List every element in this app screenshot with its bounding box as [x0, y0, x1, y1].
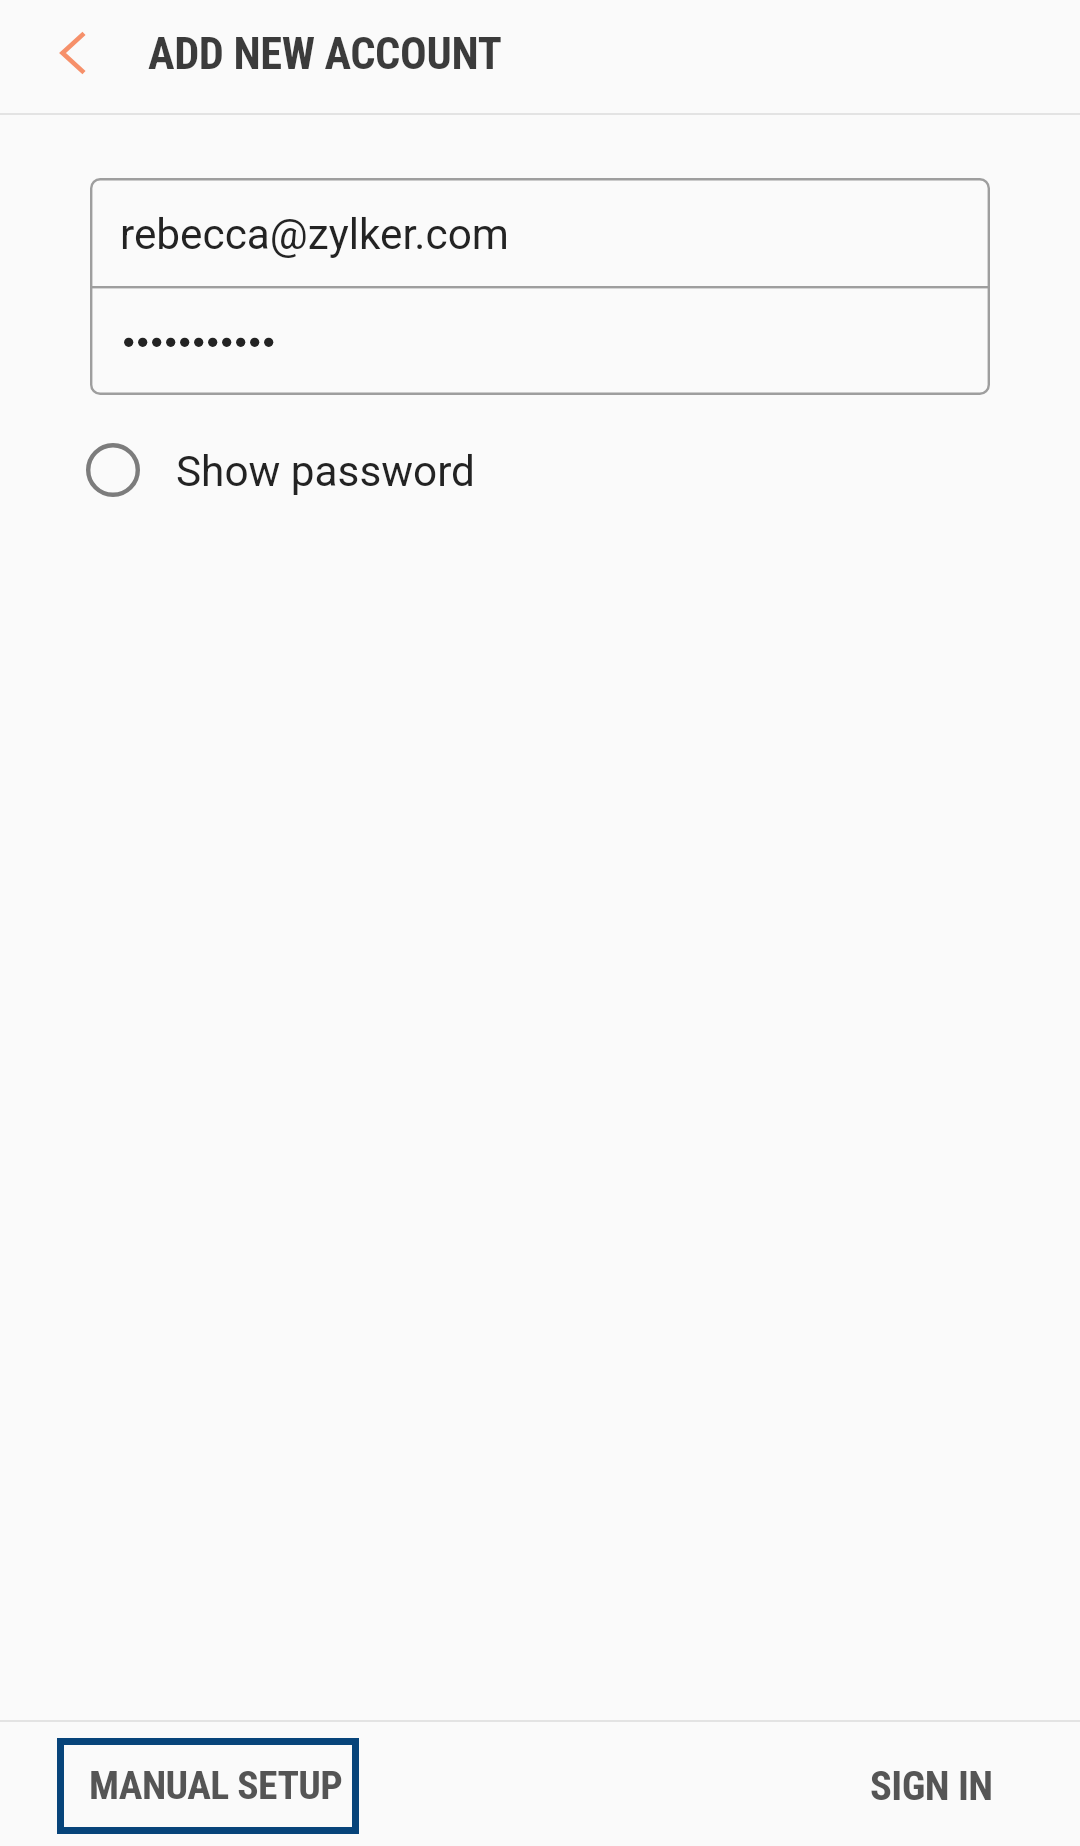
button[interactable]: Back [33, 13, 113, 93]
staticText: ADD NEW ACCOUNT [148, 28, 502, 80]
button[interactable]: Show password [0, 425, 1080, 515]
staticText: rebecca@zylker.com [120, 210, 509, 260]
button[interactable]: MANUAL SETUP [57, 1738, 359, 1834]
staticText: Show password [176, 447, 475, 497]
staticText: MANUAL SETUP [89, 1762, 343, 1808]
button[interactable]: SIGN IN [843, 1737, 1019, 1833]
staticText: SIGN IN [870, 1762, 993, 1809]
